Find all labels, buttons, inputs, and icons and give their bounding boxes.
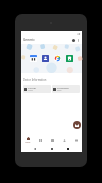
button[interactable]: Tab 3 [46, 135, 58, 145]
staticText: Wallpaper [57, 86, 69, 89]
staticText: Grey [57, 89, 62, 92]
button[interactable]: Carrier [23, 85, 51, 93]
button[interactable]: Calendar [30, 55, 37, 62]
button[interactable]: Tab 5 [70, 135, 82, 145]
button[interactable]: Google [54, 55, 61, 62]
button[interactable]: Tab 2 [34, 135, 46, 145]
button[interactable]: Recents [65, 146, 71, 152]
button[interactable]: Phone [66, 55, 73, 62]
button[interactable]: Tab 4 [58, 135, 70, 145]
staticText: Carrier [28, 86, 37, 89]
staticText: AT&T [28, 89, 33, 92]
button[interactable]: Account [70, 37, 76, 43]
button[interactable]: Home [49, 146, 55, 152]
staticText: Device Information [23, 78, 47, 82]
button[interactable]: More options [76, 38, 81, 43]
button[interactable]: Contacts [42, 55, 49, 62]
button[interactable]: Tab 1 [21, 135, 34, 145]
staticText: Home [25, 141, 31, 144]
button[interactable]: Wallpaper [52, 85, 80, 93]
staticText: Generic [23, 38, 35, 42]
button[interactable]: Compose message [73, 121, 81, 129]
button[interactable]: Back [32, 146, 38, 152]
